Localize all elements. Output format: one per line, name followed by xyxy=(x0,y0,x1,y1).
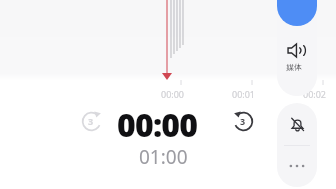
staticText: 3 xyxy=(88,115,94,127)
button[interactable]: Media volume slider xyxy=(277,0,317,96)
staticText: 00:02 xyxy=(303,88,327,100)
staticText: 01:00 xyxy=(139,144,188,170)
staticText: 媒体 xyxy=(286,62,302,72)
button[interactable]: Mute xyxy=(277,103,317,145)
staticText: 00:01 xyxy=(232,88,256,100)
button[interactable]: More options xyxy=(277,145,317,187)
button[interactable]: Rewind 3 seconds xyxy=(76,106,106,136)
staticText: 00:00 xyxy=(117,103,198,147)
button[interactable]: Forward 3 seconds xyxy=(228,106,258,136)
staticText: 3 xyxy=(240,115,246,127)
staticText: 00:00 xyxy=(161,88,185,100)
